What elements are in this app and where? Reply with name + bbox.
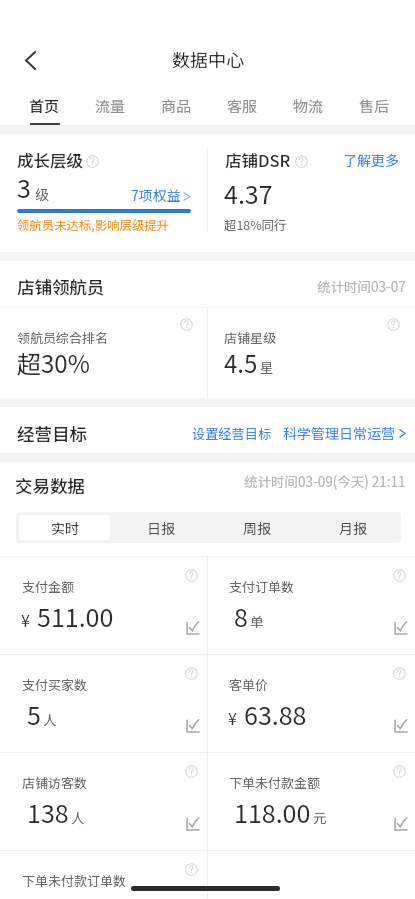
staticText: 下单未付款金额 (229, 773, 321, 792)
button[interactable]: 物流 (275, 86, 341, 126)
staticText: 客服 (227, 95, 258, 117)
staticText: 元 (313, 807, 327, 827)
staticText: 流量 (95, 95, 126, 117)
staticText: 交易数据 (15, 473, 85, 498)
staticText: 统计时间03-07 (317, 276, 406, 296)
staticText: 领航员综合排名 (17, 328, 109, 347)
staticText: 支付买家数 (22, 675, 88, 694)
button[interactable] (0, 654, 207, 751)
staticText: 领航员未达标,影响层级提升 (17, 216, 170, 234)
staticText: 4.5 (224, 345, 258, 380)
staticText: 超30% (17, 345, 90, 380)
staticText: ¥ (21, 608, 30, 631)
staticText: 下单未付款订单数 (22, 871, 127, 890)
button[interactable] (0, 850, 207, 899)
staticText: 数据中心 (172, 46, 244, 72)
button[interactable]: 了解更多 (343, 150, 399, 170)
staticText: 单 (250, 611, 264, 631)
button[interactable]: 月报 (308, 515, 398, 540)
button[interactable]: 实时 (19, 515, 110, 540)
staticText: 7项权益 (131, 185, 181, 205)
staticText: 店铺领航员 (17, 274, 105, 299)
staticText: 首页 (29, 95, 60, 117)
staticText: 支付金额 (22, 577, 75, 596)
staticText: 人 (43, 709, 57, 729)
button[interactable]: 7项权益 (131, 185, 191, 205)
staticText: 科学管理日常运营 (283, 423, 395, 443)
staticText: 级 (35, 184, 49, 204)
staticText: 日报 (147, 518, 175, 538)
staticText: 63.88 (244, 696, 307, 732)
staticText: 成长层级 (17, 148, 83, 172)
staticText: 人 (71, 807, 85, 827)
staticText: 售后 (359, 95, 390, 117)
button[interactable]: 流量 (77, 86, 143, 126)
staticText: 511.00 (37, 598, 114, 634)
staticText: ¥ (228, 706, 237, 729)
staticText: 店铺星级 (224, 328, 277, 347)
button[interactable] (208, 654, 415, 751)
button[interactable] (208, 556, 415, 653)
staticText: 星 (260, 357, 274, 377)
staticText: 3 (17, 169, 31, 205)
staticText: 店铺访客数 (22, 773, 88, 792)
staticText: 8 (234, 598, 248, 634)
staticText: 经营目标 (17, 421, 87, 446)
staticText: 支付订单数 (229, 577, 295, 596)
staticText: 超18%同行 (224, 216, 287, 234)
staticText: 118.00 (234, 794, 311, 830)
button[interactable]: Back (15, 38, 45, 82)
button[interactable]: 日报 (116, 515, 206, 540)
staticText: 5 (27, 696, 41, 732)
button[interactable]: 商品 (143, 86, 209, 126)
staticText: 周报 (243, 518, 271, 538)
button[interactable]: 设置经营目标 (192, 424, 272, 443)
button[interactable] (0, 556, 207, 653)
button[interactable]: 科学管理日常运营 (283, 423, 406, 443)
button[interactable] (208, 752, 415, 849)
staticText: 统计时间03-09(今天) 21:11 (244, 471, 406, 491)
staticText: 4.37 (224, 175, 273, 211)
staticText: 店铺DSR (225, 148, 291, 172)
button[interactable] (0, 752, 207, 849)
button[interactable]: 周报 (212, 515, 302, 540)
staticText: 商品 (161, 95, 192, 117)
button[interactable]: 售后 (341, 86, 407, 126)
button[interactable]: 首页 (11, 86, 77, 126)
staticText: 客单价 (229, 675, 269, 694)
staticText: 实时 (51, 518, 79, 538)
button[interactable]: 客服 (209, 86, 275, 126)
staticText: 138 (27, 794, 69, 830)
staticText: 物流 (293, 95, 324, 117)
staticText: 月报 (339, 518, 367, 538)
